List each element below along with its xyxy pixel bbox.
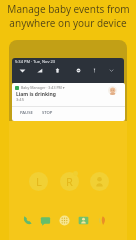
button[interactable]: Assistant bbox=[97, 215, 108, 226]
staticText: PAUSE bbox=[20, 110, 33, 116]
button[interactable]: Mobile data bbox=[36, 67, 43, 74]
button[interactable]: Phone bbox=[22, 215, 33, 226]
button[interactable]: Expand bbox=[108, 67, 115, 74]
staticText: STOP bbox=[42, 110, 53, 116]
staticText: anywhere on your device bbox=[9, 16, 127, 30]
button[interactable]: Contacts bbox=[78, 215, 89, 226]
button[interactable]: R bbox=[60, 172, 79, 191]
button[interactable]: PAUSE bbox=[20, 110, 33, 116]
staticText: L bbox=[36, 174, 42, 189]
staticText: Baby Manager · 3:43 PM ▾ bbox=[21, 85, 65, 90]
button[interactable]: All apps bbox=[59, 215, 70, 226]
button[interactable]: Wi-Fi bbox=[19, 67, 26, 74]
button[interactable]: Battery saver bbox=[54, 67, 61, 74]
staticText: 3:45 bbox=[16, 97, 24, 102]
button[interactable]: L bbox=[29, 172, 48, 191]
button[interactable]: STOP bbox=[42, 110, 53, 116]
button[interactable]: Profile bbox=[90, 172, 109, 191]
staticText: 5:34 PM · Tue, Nov 23 bbox=[15, 59, 56, 64]
staticText: Manage baby events from bbox=[7, 2, 130, 16]
staticText: Liam is drinking bbox=[16, 91, 56, 98]
button[interactable]: Messages bbox=[40, 215, 51, 226]
button[interactable]: Flashlight bbox=[91, 67, 98, 74]
button[interactable]: Do not disturb bbox=[75, 67, 82, 74]
staticText: R bbox=[66, 174, 73, 189]
